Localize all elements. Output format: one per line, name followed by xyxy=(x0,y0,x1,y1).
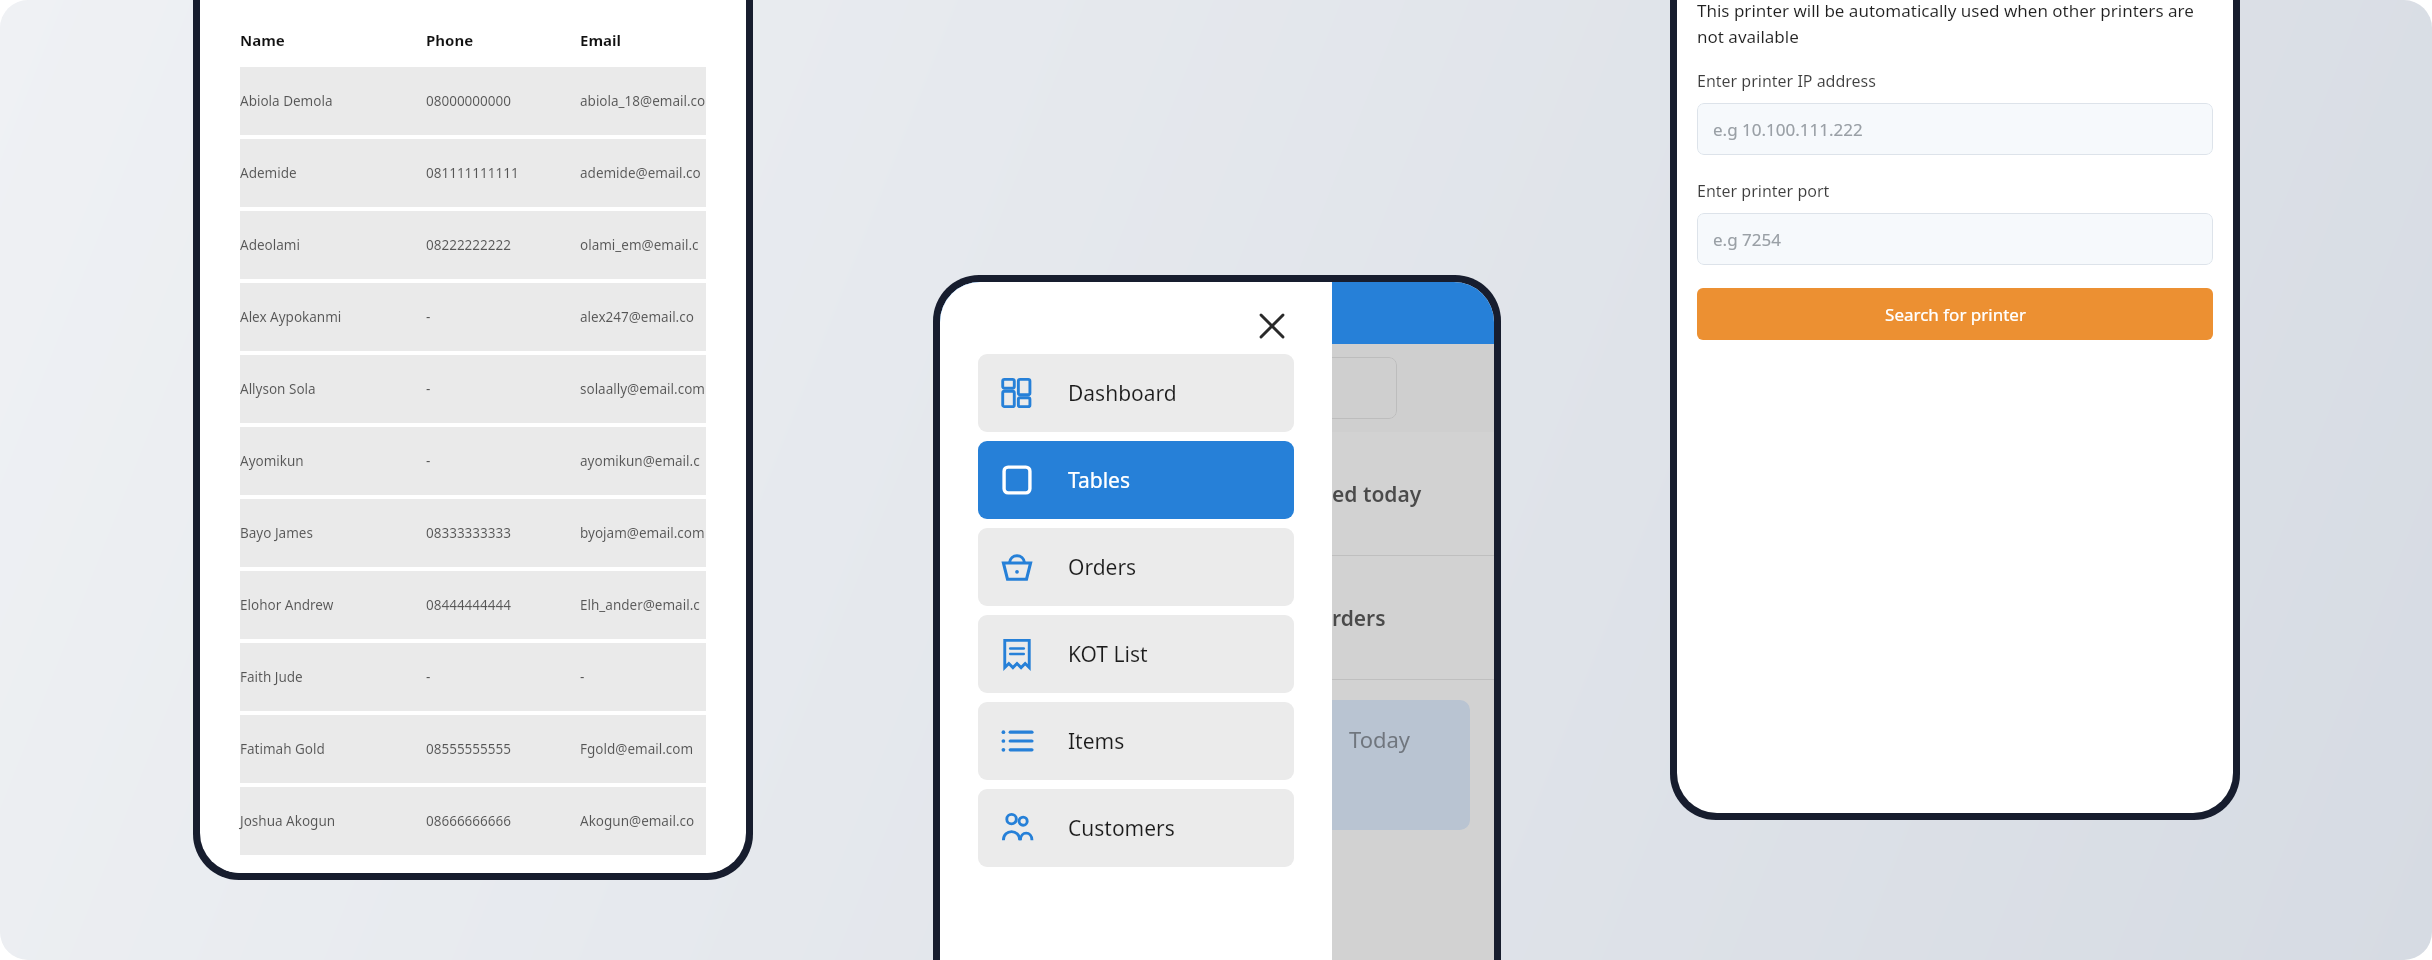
staticText: 08000000000 xyxy=(426,92,580,110)
staticText: 08333333333 xyxy=(426,524,580,542)
staticText: solaally@email.com xyxy=(580,380,706,398)
staticText: Elohor Andrew xyxy=(240,596,426,614)
button[interactable]: Items xyxy=(978,702,1294,780)
staticText: Elh_ander@email.com xyxy=(580,596,706,614)
staticText: ed today xyxy=(1332,480,1422,509)
staticText: 08555555555 xyxy=(426,740,580,758)
staticText: Faith Jude xyxy=(240,668,426,686)
staticText: ayomikun@email.com xyxy=(580,452,706,470)
staticText: Adeolami xyxy=(240,236,426,254)
staticText: KOT List xyxy=(1068,640,1148,669)
staticText: Dashboard xyxy=(1068,379,1177,408)
button[interactable]: Close menu xyxy=(1250,304,1294,348)
staticText: - xyxy=(426,668,580,686)
button[interactable]: Bayo James xyxy=(240,499,706,567)
staticText: - xyxy=(426,308,580,326)
staticText: e.g 7254 xyxy=(1713,228,1781,251)
staticText: Alex Aypokanmi xyxy=(240,308,426,326)
staticText: olami_em@email.com xyxy=(580,236,706,254)
staticText: rders xyxy=(1332,604,1386,633)
staticText: Abiola Demola xyxy=(240,92,426,110)
button[interactable]: Search for printer xyxy=(1697,288,2213,340)
button[interactable]: Orders xyxy=(978,528,1294,606)
button[interactable]: Allyson Sola xyxy=(240,355,706,423)
staticText: Joshua Akogun xyxy=(240,812,426,830)
staticText: Fatimah Gold xyxy=(240,740,426,758)
staticText: Email xyxy=(580,30,706,50)
button[interactable]: Tables xyxy=(978,441,1294,519)
staticText: Orders xyxy=(1068,553,1137,582)
staticText: 08666666666 xyxy=(426,812,580,830)
staticText: byojam@email.com xyxy=(580,524,706,542)
staticText: 08222222222 xyxy=(426,236,580,254)
button[interactable]: Elohor Andrew xyxy=(240,571,706,639)
staticText: ademide@email.com xyxy=(580,164,706,182)
staticText: 081111111111 xyxy=(426,164,580,182)
staticText: Ayomikun xyxy=(240,452,426,470)
staticText: - xyxy=(426,452,580,470)
button[interactable]: Faith Jude xyxy=(240,643,706,711)
staticText: Bayo James xyxy=(240,524,426,542)
button[interactable]: Customers xyxy=(978,789,1294,867)
staticText: Allyson Sola xyxy=(240,380,426,398)
staticText: Phone xyxy=(426,30,580,50)
button[interactable]: KOT List xyxy=(978,615,1294,693)
button[interactable]: Fatimah Gold xyxy=(240,715,706,783)
button[interactable]: Ayomikun xyxy=(240,427,706,495)
staticText: Enter printer IP address xyxy=(1697,70,1876,92)
button[interactable]: e.g 10.100.111.222 xyxy=(1697,103,2213,155)
staticText: 08444444444 xyxy=(426,596,580,614)
staticText: Name xyxy=(240,30,426,50)
staticText: Akogun@email.com xyxy=(580,812,706,830)
staticText: Ademide xyxy=(240,164,426,182)
staticText: Today xyxy=(1349,724,1411,754)
staticText: e.g 10.100.111.222 xyxy=(1713,118,1863,141)
staticText: Enter printer port xyxy=(1697,180,1830,202)
button[interactable]: e.g 7254 xyxy=(1697,213,2213,265)
staticText: Fgold@email.com xyxy=(580,740,706,758)
staticText: - xyxy=(426,380,580,398)
button[interactable]: Adeolami xyxy=(240,211,706,279)
staticText: This printer will be automatically used … xyxy=(1697,0,2213,48)
staticText: Search for printer xyxy=(1885,303,2026,326)
staticText: Customers xyxy=(1068,814,1175,843)
button[interactable]: Abiola Demola xyxy=(240,67,706,135)
staticText: - xyxy=(580,668,706,686)
staticText: Tables xyxy=(1068,466,1131,495)
staticText: abiola_18@email.com xyxy=(580,92,706,110)
button[interactable]: Ademide xyxy=(240,139,706,207)
staticText: alex247@email.com xyxy=(580,308,706,326)
button[interactable]: Alex Aypokanmi xyxy=(240,283,706,351)
button[interactable]: Joshua Akogun xyxy=(240,787,706,855)
staticText: Items xyxy=(1068,727,1125,756)
button[interactable]: Dashboard xyxy=(978,354,1294,432)
